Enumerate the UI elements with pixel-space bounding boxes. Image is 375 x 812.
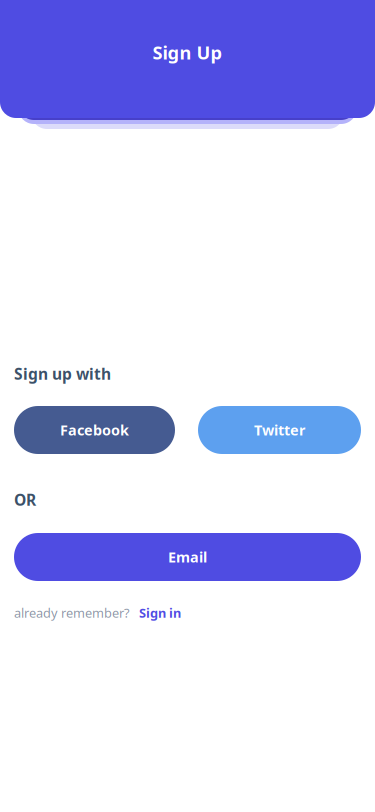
staticText: OR [14, 489, 36, 510]
button[interactable]: Facebook [14, 406, 175, 454]
staticText: Sign Up [152, 40, 222, 65]
button[interactable]: Twitter [198, 406, 361, 454]
staticText: Sign in [139, 604, 181, 621]
staticText: Twitter [254, 420, 305, 440]
staticText: Sign up with [14, 363, 111, 384]
button[interactable]: Sign in [139, 604, 181, 621]
button[interactable]: Email [14, 533, 361, 581]
staticText: Facebook [60, 420, 129, 440]
staticText: Email [168, 547, 207, 567]
staticText: already remember? [14, 604, 130, 621]
